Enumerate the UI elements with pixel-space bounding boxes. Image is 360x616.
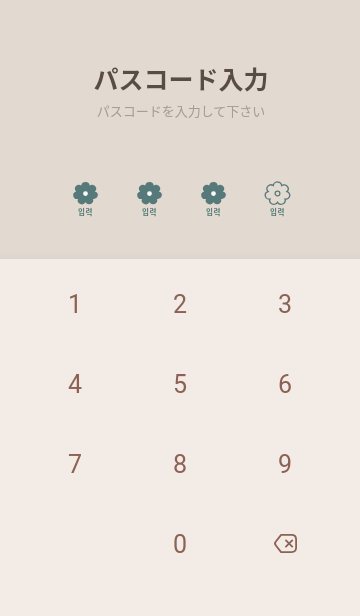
staticText: 1 [68,290,83,319]
button[interactable]: 2 [140,273,220,335]
staticText: 2 [173,290,188,319]
button[interactable]: 0 [140,513,220,575]
staticText: 3 [278,290,293,319]
other: Backspace [273,534,297,553]
staticText: 8 [173,450,188,479]
staticText: 9 [278,450,293,479]
button[interactable]: 8 [140,433,220,495]
staticText: パスコード入力 [1,60,360,96]
staticText: 5 [173,370,188,399]
button[interactable]: Backspace [245,513,325,575]
staticText: 0 [173,530,188,559]
staticText: 6 [278,370,293,399]
button[interactable]: 9 [245,433,325,495]
staticText: 입력 [206,206,221,217]
staticText: 4 [68,370,83,399]
staticText: 입력 [270,206,285,217]
staticText: 7 [68,450,83,479]
button[interactable]: 5 [140,353,220,415]
button[interactable]: 4 [35,353,115,415]
button[interactable]: 1 [35,273,115,335]
staticText: パスコードを入力して下さい [1,101,360,120]
button[interactable]: 7 [35,433,115,495]
button[interactable]: 3 [245,273,325,335]
button[interactable]: 6 [245,353,325,415]
staticText: 입력 [142,206,157,217]
staticText: 입력 [78,206,93,217]
